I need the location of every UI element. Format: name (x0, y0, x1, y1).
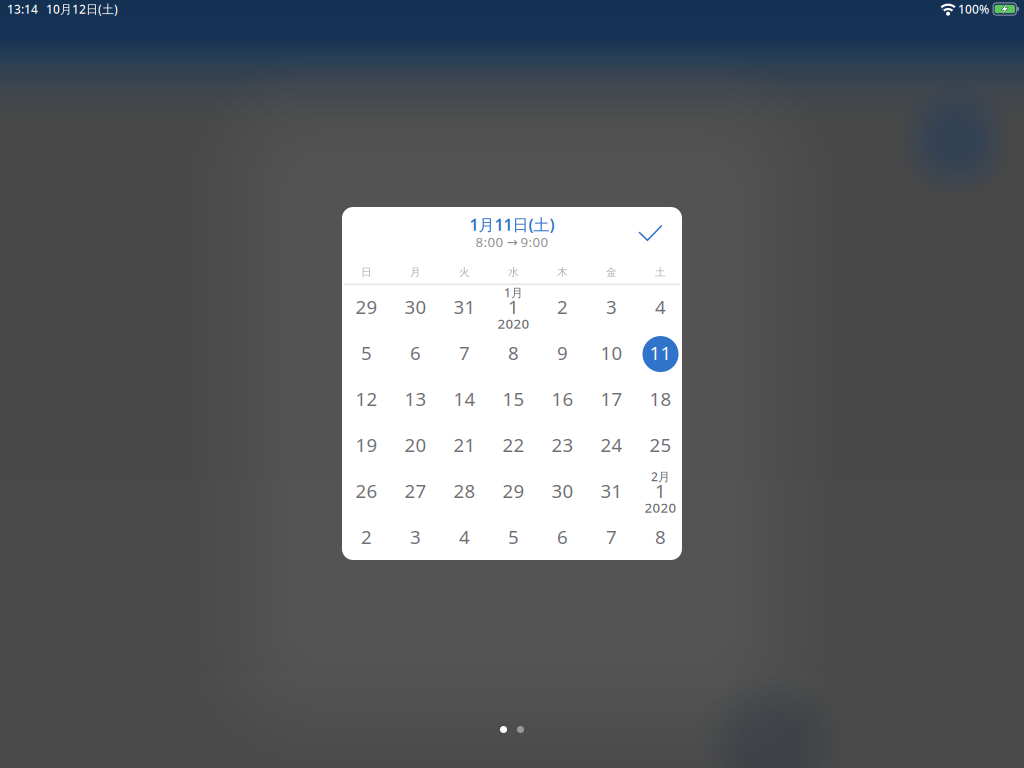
staticText: 13 (404, 386, 426, 411)
staticText: 2 (361, 524, 372, 549)
staticText: 10 (600, 340, 622, 365)
staticText: 6 (410, 340, 421, 365)
staticText: 26 (355, 478, 377, 503)
staticText: 11 (649, 340, 671, 365)
button[interactable]: 8 (636, 515, 685, 561)
button[interactable]: 16 (538, 377, 587, 423)
staticText: 31 (600, 478, 622, 503)
staticText: 1 (508, 294, 519, 319)
staticText: 1 (655, 478, 666, 503)
staticText: 火 (459, 266, 470, 279)
staticText: 日 (361, 266, 372, 279)
button[interactable]: 30 (538, 469, 587, 515)
staticText: 4 (655, 294, 666, 319)
staticText: 19 (355, 432, 377, 457)
staticText: 16 (551, 386, 573, 411)
staticText: 15 (502, 386, 524, 411)
staticText: 30 (404, 294, 426, 319)
button[interactable]: 9 (538, 331, 587, 377)
staticText: 7 (459, 340, 470, 365)
button[interactable]: 10 (587, 331, 636, 377)
staticText: 1月 (504, 285, 523, 300)
button[interactable]: 24 (587, 423, 636, 469)
staticText: 21 (453, 432, 475, 457)
staticText: 金 (606, 266, 617, 279)
staticText: 23 (551, 432, 573, 457)
button[interactable]: 5 (342, 331, 391, 377)
staticText: 4 (459, 524, 470, 549)
staticText: 2 (557, 294, 568, 319)
staticText: 25 (649, 432, 671, 457)
staticText: 13:14 (7, 1, 38, 17)
button[interactable]: 13 (391, 377, 440, 423)
staticText: 24 (600, 432, 622, 457)
button[interactable]: 2 (342, 515, 391, 561)
button[interactable]: 28 (440, 469, 489, 515)
staticText: 土 (655, 266, 666, 279)
staticText: 5 (508, 524, 519, 549)
staticText: 10月12日(土) (46, 1, 118, 17)
button[interactable]: 22 (489, 423, 538, 469)
button[interactable]: 15 (489, 377, 538, 423)
button[interactable]: 8 (489, 331, 538, 377)
button[interactable]: 12 (342, 377, 391, 423)
button[interactable]: 2 (538, 285, 587, 331)
staticText: 木 (557, 266, 568, 279)
button[interactable]: 5 (489, 515, 538, 561)
button[interactable]: 21 (440, 423, 489, 469)
staticText: 2020 (644, 499, 676, 516)
button[interactable]: 26 (342, 469, 391, 515)
staticText: 8 (655, 524, 666, 549)
staticText: 22 (502, 432, 524, 457)
staticText: 水 (508, 266, 519, 279)
button[interactable]: 19 (342, 423, 391, 469)
button[interactable]: 31 (587, 469, 636, 515)
button[interactable]: 1月 (489, 285, 538, 331)
staticText: 30 (551, 478, 573, 503)
staticText: 7 (606, 524, 617, 549)
button[interactable]: Done (628, 213, 671, 250)
button[interactable]: 11 (636, 331, 685, 377)
button[interactable]: 4 (440, 515, 489, 561)
staticText: 17 (600, 386, 622, 411)
staticText: 27 (404, 478, 426, 503)
staticText: 6 (557, 524, 568, 549)
staticText: 31 (453, 294, 475, 319)
staticText: 8:00 → 9:00 (475, 233, 548, 251)
button[interactable]: 25 (636, 423, 685, 469)
button[interactable]: 6 (391, 331, 440, 377)
staticText: 18 (649, 386, 671, 411)
staticText: 3 (410, 524, 421, 549)
button[interactable]: 31 (440, 285, 489, 331)
staticText: 100% (958, 1, 989, 17)
button[interactable]: 4 (636, 285, 685, 331)
button[interactable]: 29 (489, 469, 538, 515)
button[interactable]: 2月 (636, 469, 685, 515)
button[interactable]: 18 (636, 377, 685, 423)
button[interactable]: 7 (440, 331, 489, 377)
staticText: 28 (453, 478, 475, 503)
staticText: 月 (410, 266, 421, 279)
staticText: 3 (606, 294, 617, 319)
button[interactable]: 29 (342, 285, 391, 331)
staticText: 12 (355, 386, 377, 411)
staticText: 2020 (497, 315, 529, 332)
staticText: 8 (508, 340, 519, 365)
button[interactable]: 14 (440, 377, 489, 423)
button[interactable]: 30 (391, 285, 440, 331)
button[interactable]: 7 (587, 515, 636, 561)
button[interactable]: 23 (538, 423, 587, 469)
staticText: 5 (361, 340, 372, 365)
staticText: 1月11日(土) (469, 214, 554, 235)
staticText: 20 (404, 432, 426, 457)
staticText: 29 (355, 294, 377, 319)
button[interactable]: 3 (391, 515, 440, 561)
button[interactable]: 6 (538, 515, 587, 561)
button[interactable]: 20 (391, 423, 440, 469)
button[interactable]: 27 (391, 469, 440, 515)
staticText: 9 (557, 340, 568, 365)
button[interactable]: 3 (587, 285, 636, 331)
button[interactable]: 17 (587, 377, 636, 423)
staticText: 2月 (651, 469, 670, 484)
staticText: 29 (502, 478, 524, 503)
